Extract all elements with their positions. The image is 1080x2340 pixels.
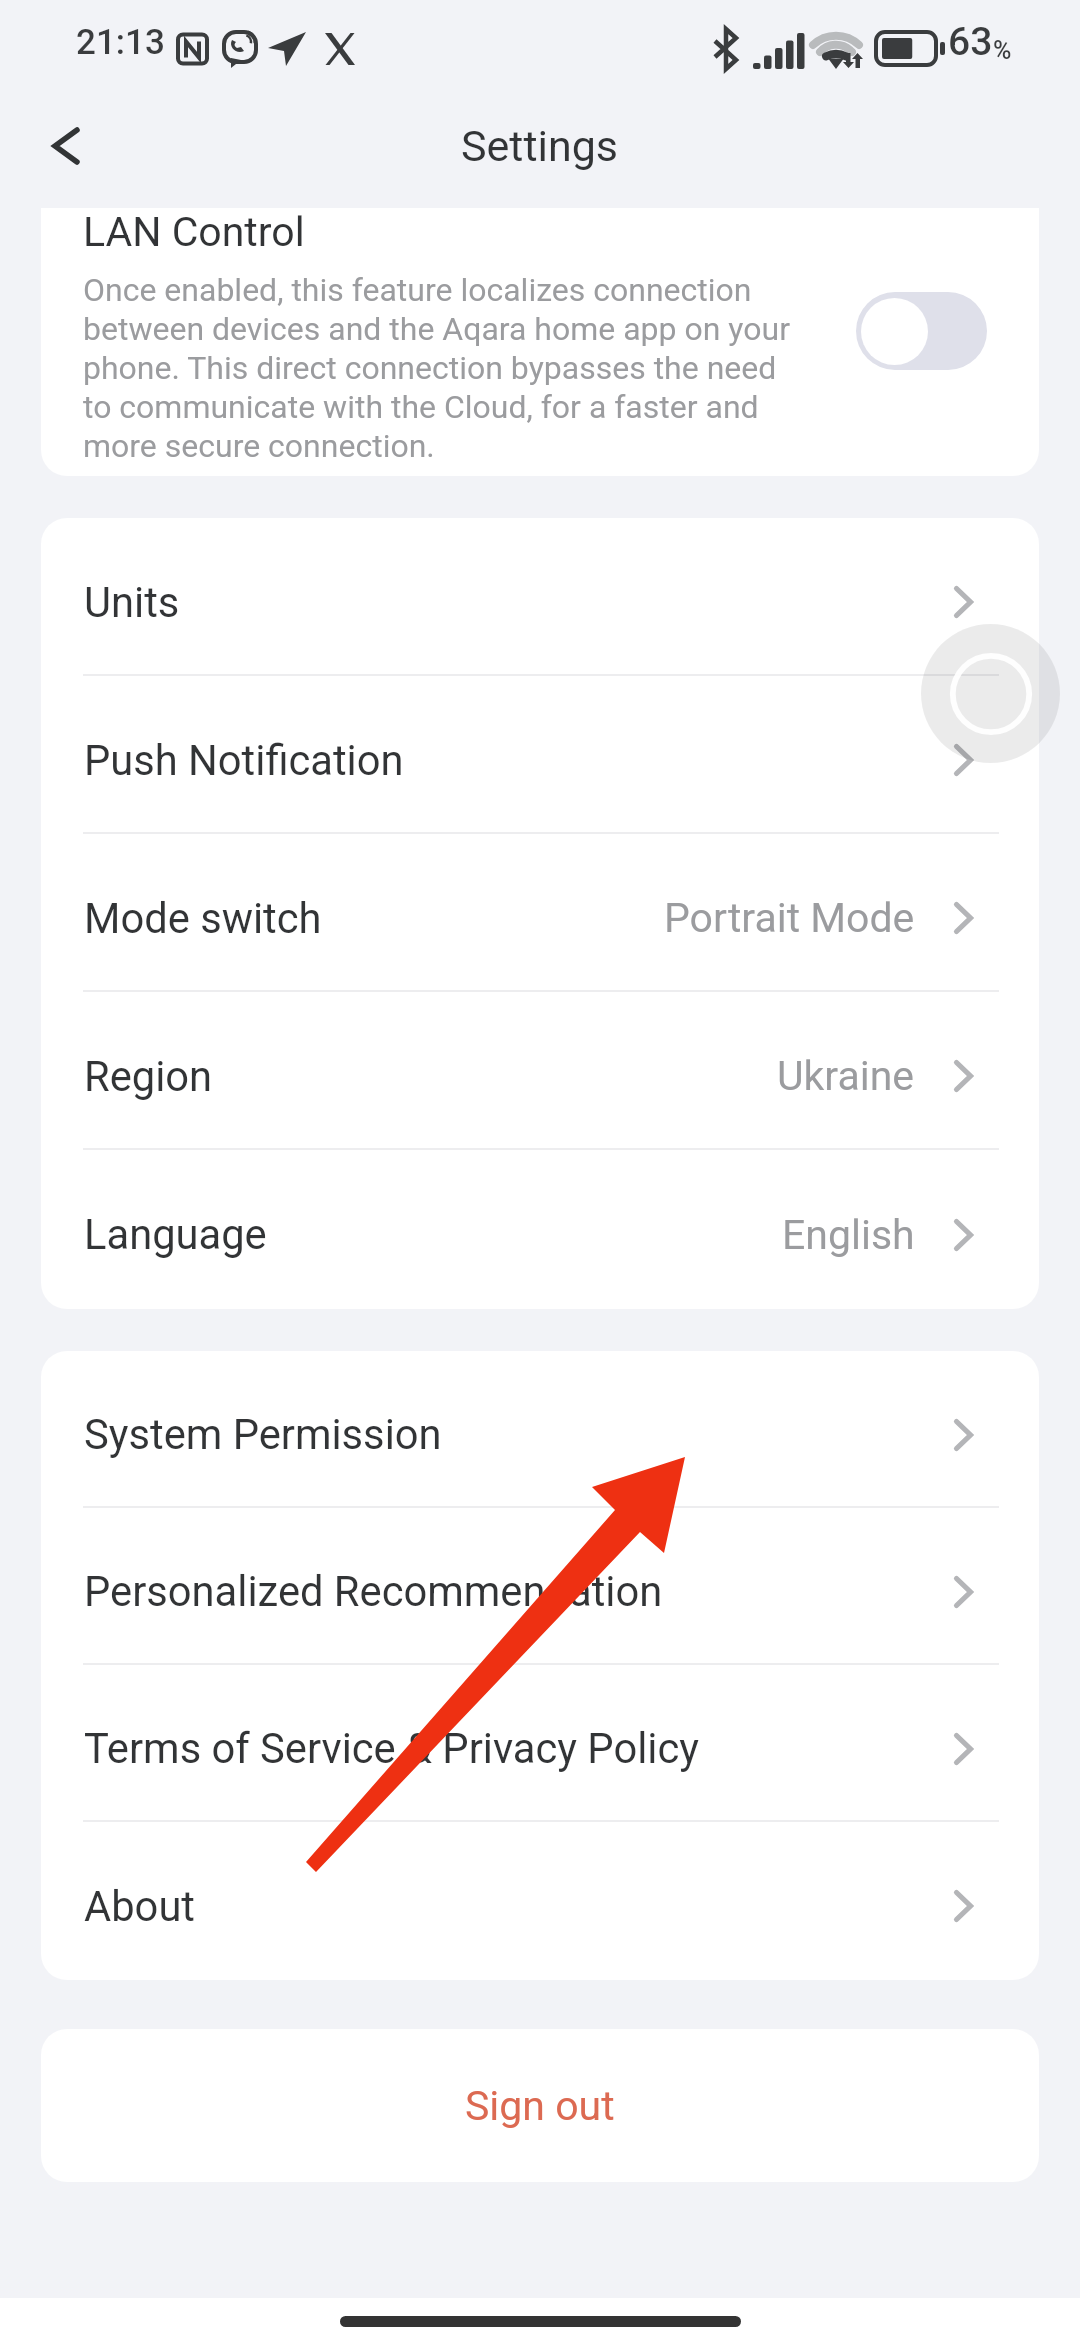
button[interactable]: Terms of Service & Privacy Policy [41,1665,1039,1822]
staticText: Personalized Recommendation [84,1567,663,1616]
staticText: Terms of Service & Privacy Policy [84,1724,699,1773]
button[interactable]: Back [0,84,132,208]
staticText: LAN Control [83,208,305,256]
button[interactable]: Assistive touch [921,624,1060,763]
button[interactable]: Sign out [41,2029,1039,2182]
staticText: About [84,1882,195,1931]
button[interactable]: Push Notification [41,676,1039,834]
button[interactable]: System Permission [41,1351,1039,1508]
staticText: % [993,36,1012,65]
button[interactable]: About [41,1822,1039,1980]
staticText: Units [84,578,180,627]
staticText: Mode switch [84,894,322,943]
staticText: System Permission [84,1410,442,1459]
staticText: 63 [948,19,993,65]
staticText: Language [84,1210,267,1259]
button[interactable]: Personalized Recommendation [41,1508,1039,1665]
button[interactable]: Region [41,992,1039,1150]
staticText: Settings [461,121,619,171]
staticText: Ukraine [777,1052,915,1100]
button[interactable]: Units [41,518,1039,676]
button[interactable]: Mode switch [41,834,1039,992]
staticText: English [782,1211,915,1259]
staticText: 21:13 [76,22,165,63]
staticText: Portrait Mode [664,894,915,942]
staticText: Once enabled, this feature localizes con… [83,271,799,465]
button[interactable]: LAN Control toggle [856,292,987,370]
button[interactable]: Language [41,1150,1039,1309]
staticText: Sign out [465,2082,615,2130]
button[interactable]: LAN Control [41,208,1039,476]
staticText: Region [84,1052,213,1101]
staticText: Push Notification [84,736,404,785]
